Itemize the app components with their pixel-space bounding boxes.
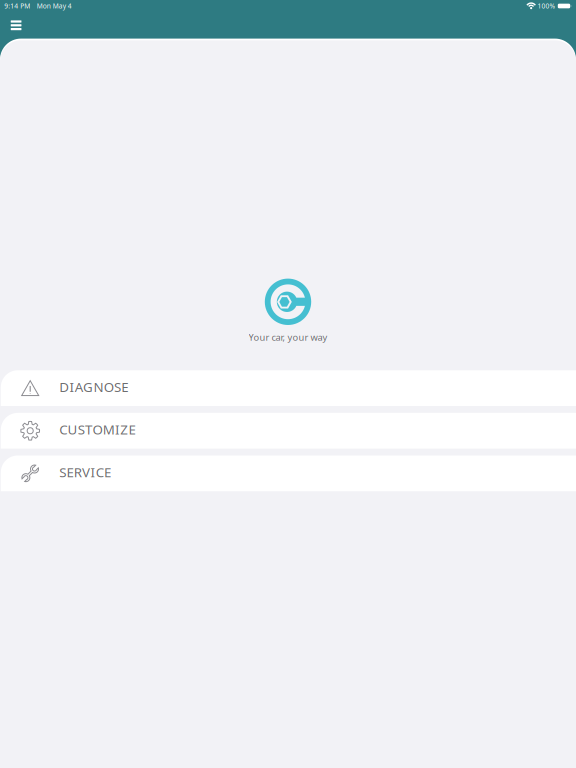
- staticText: 9:14 PM: [4, 2, 30, 10]
- staticText: 100%: [537, 2, 555, 10]
- staticText: Mon May 4: [37, 2, 72, 10]
- button[interactable]: SERVICE: [0, 455, 576, 491]
- button[interactable]: Open menu: [4, 13, 28, 37]
- staticText: Your car, your way: [248, 331, 327, 343]
- staticText: CUSTOMIZE: [59, 421, 136, 438]
- staticText: SERVICE: [59, 463, 111, 481]
- button[interactable]: DIAGNOSE: [0, 370, 576, 406]
- staticText: DIAGNOSE: [59, 378, 128, 396]
- button[interactable]: CUSTOMIZE: [0, 413, 576, 449]
